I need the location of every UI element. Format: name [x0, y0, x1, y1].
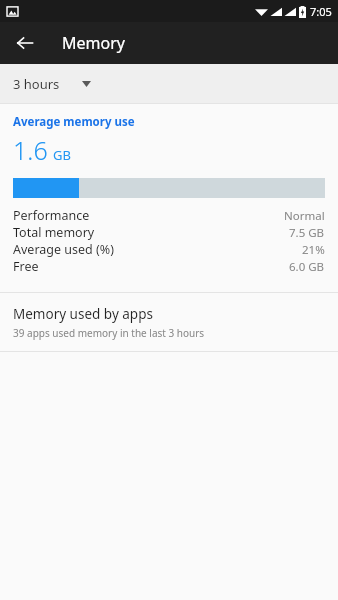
staticText: Total memory: [13, 224, 95, 241]
staticText: 7:05: [310, 4, 332, 19]
button[interactable]: Free: [0, 258, 338, 275]
button[interactable]: 3 hours: [0, 64, 338, 103]
button[interactable]: Performance: [0, 207, 338, 224]
staticText: 6.0 GB: [289, 259, 325, 275]
staticText: Free: [13, 258, 39, 275]
staticText: 39 apps used memory in the last 3 hours: [13, 326, 205, 340]
staticText: GB: [53, 146, 71, 164]
button[interactable]: Average used (%): [0, 241, 338, 258]
staticText: Performance: [13, 207, 90, 224]
button[interactable]: Navigate up: [7, 25, 43, 61]
staticText: 1.6: [13, 133, 48, 167]
staticText: Memory: [62, 32, 125, 54]
button[interactable]: Memory used by apps: [0, 293, 338, 351]
staticText: 3 hours: [13, 75, 60, 93]
staticText: Average memory use: [13, 114, 135, 130]
staticText: Memory used by apps: [13, 305, 153, 323]
staticText: Average used (%): [13, 241, 114, 258]
staticText: Normal: [284, 208, 325, 224]
staticText: 7.5 GB: [289, 225, 325, 241]
staticText: 21%: [302, 242, 325, 258]
button[interactable]: Total memory: [0, 224, 338, 241]
